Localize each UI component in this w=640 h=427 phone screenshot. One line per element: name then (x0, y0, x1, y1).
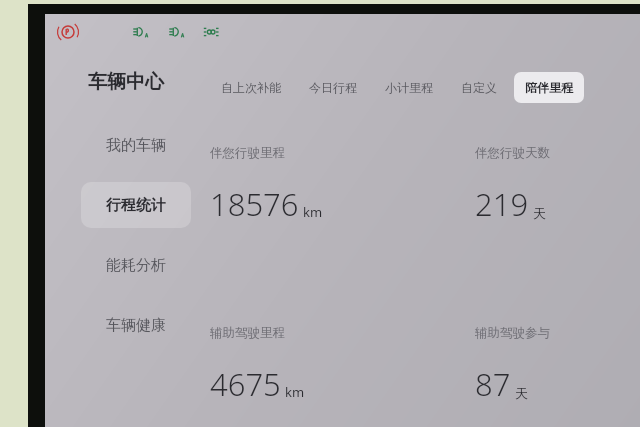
staticText: 能耗分析 (106, 256, 166, 275)
button[interactable]: 我的车辆 (81, 122, 191, 168)
other: Low beam (167, 22, 187, 42)
button[interactable]: 小计里程 (374, 72, 444, 103)
staticText: 辅助驾驶参与 (475, 325, 550, 341)
staticText: km (303, 203, 323, 221)
staticText: 车辆中心 (88, 70, 164, 94)
other: Auto low beam (131, 22, 151, 42)
staticText: 伴您行驶里程 (210, 145, 285, 161)
staticText: 行程统计 (106, 196, 166, 215)
button[interactable]: 自定义 (450, 72, 508, 103)
staticText: 伴您行驶天数 (475, 145, 550, 161)
staticText: 219 (475, 183, 529, 225)
staticText: 小计里程 (385, 80, 433, 95)
staticText: 87 (475, 363, 511, 405)
staticText: 自定义 (461, 80, 497, 95)
staticText: 今日行程 (309, 80, 357, 95)
other: Position lights (201, 22, 221, 42)
staticText: km (285, 383, 305, 401)
staticText: 18576 (210, 183, 299, 225)
staticText: 4675 (210, 363, 281, 405)
button[interactable]: 今日行程 (298, 72, 368, 103)
staticText: 辅助驾驶里程 (210, 325, 285, 341)
staticText: 自上次补能 (221, 80, 281, 95)
button[interactable]: 陪伴里程 (514, 72, 584, 103)
staticText: 车辆健康 (106, 316, 166, 335)
button[interactable]: 能耗分析 (81, 242, 191, 288)
staticText: 我的车辆 (106, 136, 166, 155)
other: Parking brake (57, 21, 79, 43)
staticText: 陪伴里程 (525, 80, 573, 95)
staticText: 天 (533, 205, 546, 221)
button[interactable]: 行程统计 (81, 182, 191, 228)
button[interactable]: 车辆健康 (81, 302, 191, 348)
staticText: 天 (515, 385, 528, 401)
button[interactable]: 自上次补能 (210, 72, 292, 103)
